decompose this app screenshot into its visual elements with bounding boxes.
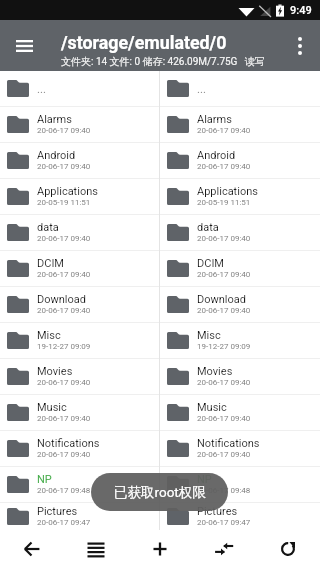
staticText: 20-06-17 09:40: [197, 162, 251, 171]
button[interactable]: ...: [0, 71, 159, 106]
staticText: Applications: [37, 185, 98, 198]
button[interactable]: Download: [0, 287, 159, 322]
button[interactable]: More options: [280, 20, 320, 71]
staticText: 20-05-19 11:51: [37, 198, 91, 207]
staticText: Download: [197, 293, 246, 306]
staticText: 20-06-17 09:40: [197, 306, 251, 315]
button[interactable]: Pictures: [0, 503, 159, 530]
staticText: 20-06-17 09:40: [37, 378, 91, 387]
staticText: 20-06-17 09:40: [197, 378, 251, 387]
staticText: /storage/emulated/0: [61, 32, 227, 53]
staticText: 已获取root权限: [114, 484, 206, 501]
staticText: Movies: [197, 365, 233, 378]
button[interactable]: Music: [0, 395, 159, 430]
button[interactable]: Applications: [0, 179, 159, 214]
staticText: 20-06-17 09:40: [197, 270, 251, 279]
staticText: NP: [197, 473, 212, 486]
staticText: Movies: [37, 365, 73, 378]
staticText: data: [197, 221, 219, 234]
staticText: ...: [37, 82, 47, 95]
staticText: Notifications: [37, 437, 100, 450]
staticText: 20-06-17 09:40: [37, 450, 91, 459]
button[interactable]: Android: [160, 143, 320, 178]
button[interactable]: ...: [160, 71, 320, 106]
staticText: 20-06-17 09:47: [197, 518, 251, 527]
staticText: 20-06-17 09:40: [37, 126, 91, 135]
button[interactable]: data: [160, 215, 320, 250]
staticText: 20-06-17 09:48: [37, 486, 91, 495]
staticText: Applications: [197, 185, 258, 198]
staticText: Music: [37, 401, 67, 414]
button[interactable]: Add: [136, 530, 184, 569]
staticText: 20-06-17 09:47: [37, 518, 91, 527]
button[interactable]: Misc: [0, 323, 159, 358]
staticText: 20-06-17 09:40: [197, 414, 251, 423]
button[interactable]: Music: [160, 395, 320, 430]
staticText: 9:49: [290, 4, 312, 17]
button[interactable]: Movies: [0, 359, 159, 394]
staticText: Download: [37, 293, 86, 306]
staticText: 20-06-17 09:40: [37, 270, 91, 279]
staticText: 19-12-27 09:09: [197, 342, 251, 351]
staticText: Misc: [197, 329, 221, 342]
staticText: 20-06-17 09:40: [37, 162, 91, 171]
staticText: 20-06-17 09:40: [37, 234, 91, 243]
button[interactable]: Applications: [160, 179, 320, 214]
staticText: Notifications: [197, 437, 260, 450]
button[interactable]: NP: [0, 467, 159, 502]
button[interactable]: Notifications: [0, 431, 159, 466]
button[interactable]: DCIM: [160, 251, 320, 286]
staticText: 20-06-17 09:40: [197, 126, 251, 135]
button[interactable]: NP: [160, 467, 320, 502]
staticText: 20-06-17 09:40: [197, 450, 251, 459]
button[interactable]: Movies: [160, 359, 320, 394]
button[interactable]: Menu: [0, 20, 48, 71]
button[interactable]: List: [72, 530, 120, 569]
staticText: Alarms: [37, 113, 72, 126]
button[interactable]: DCIM: [0, 251, 159, 286]
button[interactable]: Alarms: [160, 107, 320, 142]
staticText: 文件夹: 14 文件: 0 储存: 426.09M/7.75G 读写: [61, 55, 265, 68]
staticText: Android: [37, 149, 76, 162]
button[interactable]: Download: [160, 287, 320, 322]
staticText: DCIM: [37, 257, 64, 270]
staticText: NP: [37, 473, 52, 486]
staticText: Music: [197, 401, 227, 414]
staticText: ...: [197, 82, 207, 95]
staticText: Pictures: [37, 505, 78, 518]
button[interactable]: Alarms: [0, 107, 159, 142]
staticText: Android: [197, 149, 236, 162]
button[interactable]: Transfer: [200, 530, 248, 569]
button[interactable]: Refresh: [264, 530, 312, 569]
staticText: Misc: [37, 329, 61, 342]
staticText: DCIM: [197, 257, 224, 270]
button[interactable]: Back: [8, 530, 56, 569]
staticText: 20-06-17 09:40: [37, 414, 91, 423]
staticText: 20-06-17 09:48: [197, 486, 251, 495]
staticText: Alarms: [197, 113, 232, 126]
staticText: 20-06-17 09:40: [197, 234, 251, 243]
button[interactable]: Android: [0, 143, 159, 178]
button[interactable]: data: [0, 215, 159, 250]
button[interactable]: Misc: [160, 323, 320, 358]
button[interactable]: Notifications: [160, 431, 320, 466]
staticText: data: [37, 221, 59, 234]
staticText: 20-05-19 11:51: [197, 198, 251, 207]
staticText: Pictures: [197, 505, 238, 518]
button[interactable]: Pictures: [160, 503, 320, 530]
staticText: 20-06-17 09:40: [37, 306, 91, 315]
staticText: 19-12-27 09:09: [37, 342, 91, 351]
